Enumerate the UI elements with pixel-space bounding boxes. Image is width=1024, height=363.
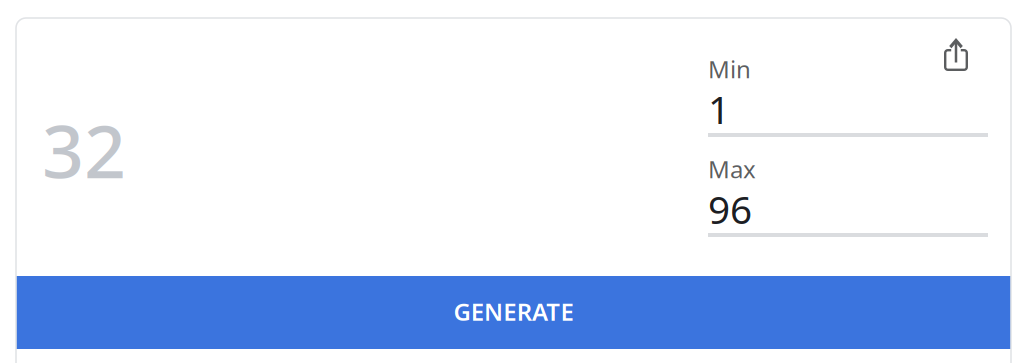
staticText: GENERATE: [453, 296, 574, 327]
staticText: Max: [708, 153, 756, 185]
button[interactable]: GENERATE: [16, 276, 1011, 349]
staticText: 32: [42, 101, 126, 198]
staticText: 1: [708, 83, 730, 135]
button[interactable]: Min: [708, 56, 988, 137]
button[interactable]: Max: [708, 156, 988, 237]
button[interactable]: Share: [938, 32, 974, 77]
staticText: Min: [708, 53, 751, 85]
staticText: 96: [708, 183, 752, 235]
